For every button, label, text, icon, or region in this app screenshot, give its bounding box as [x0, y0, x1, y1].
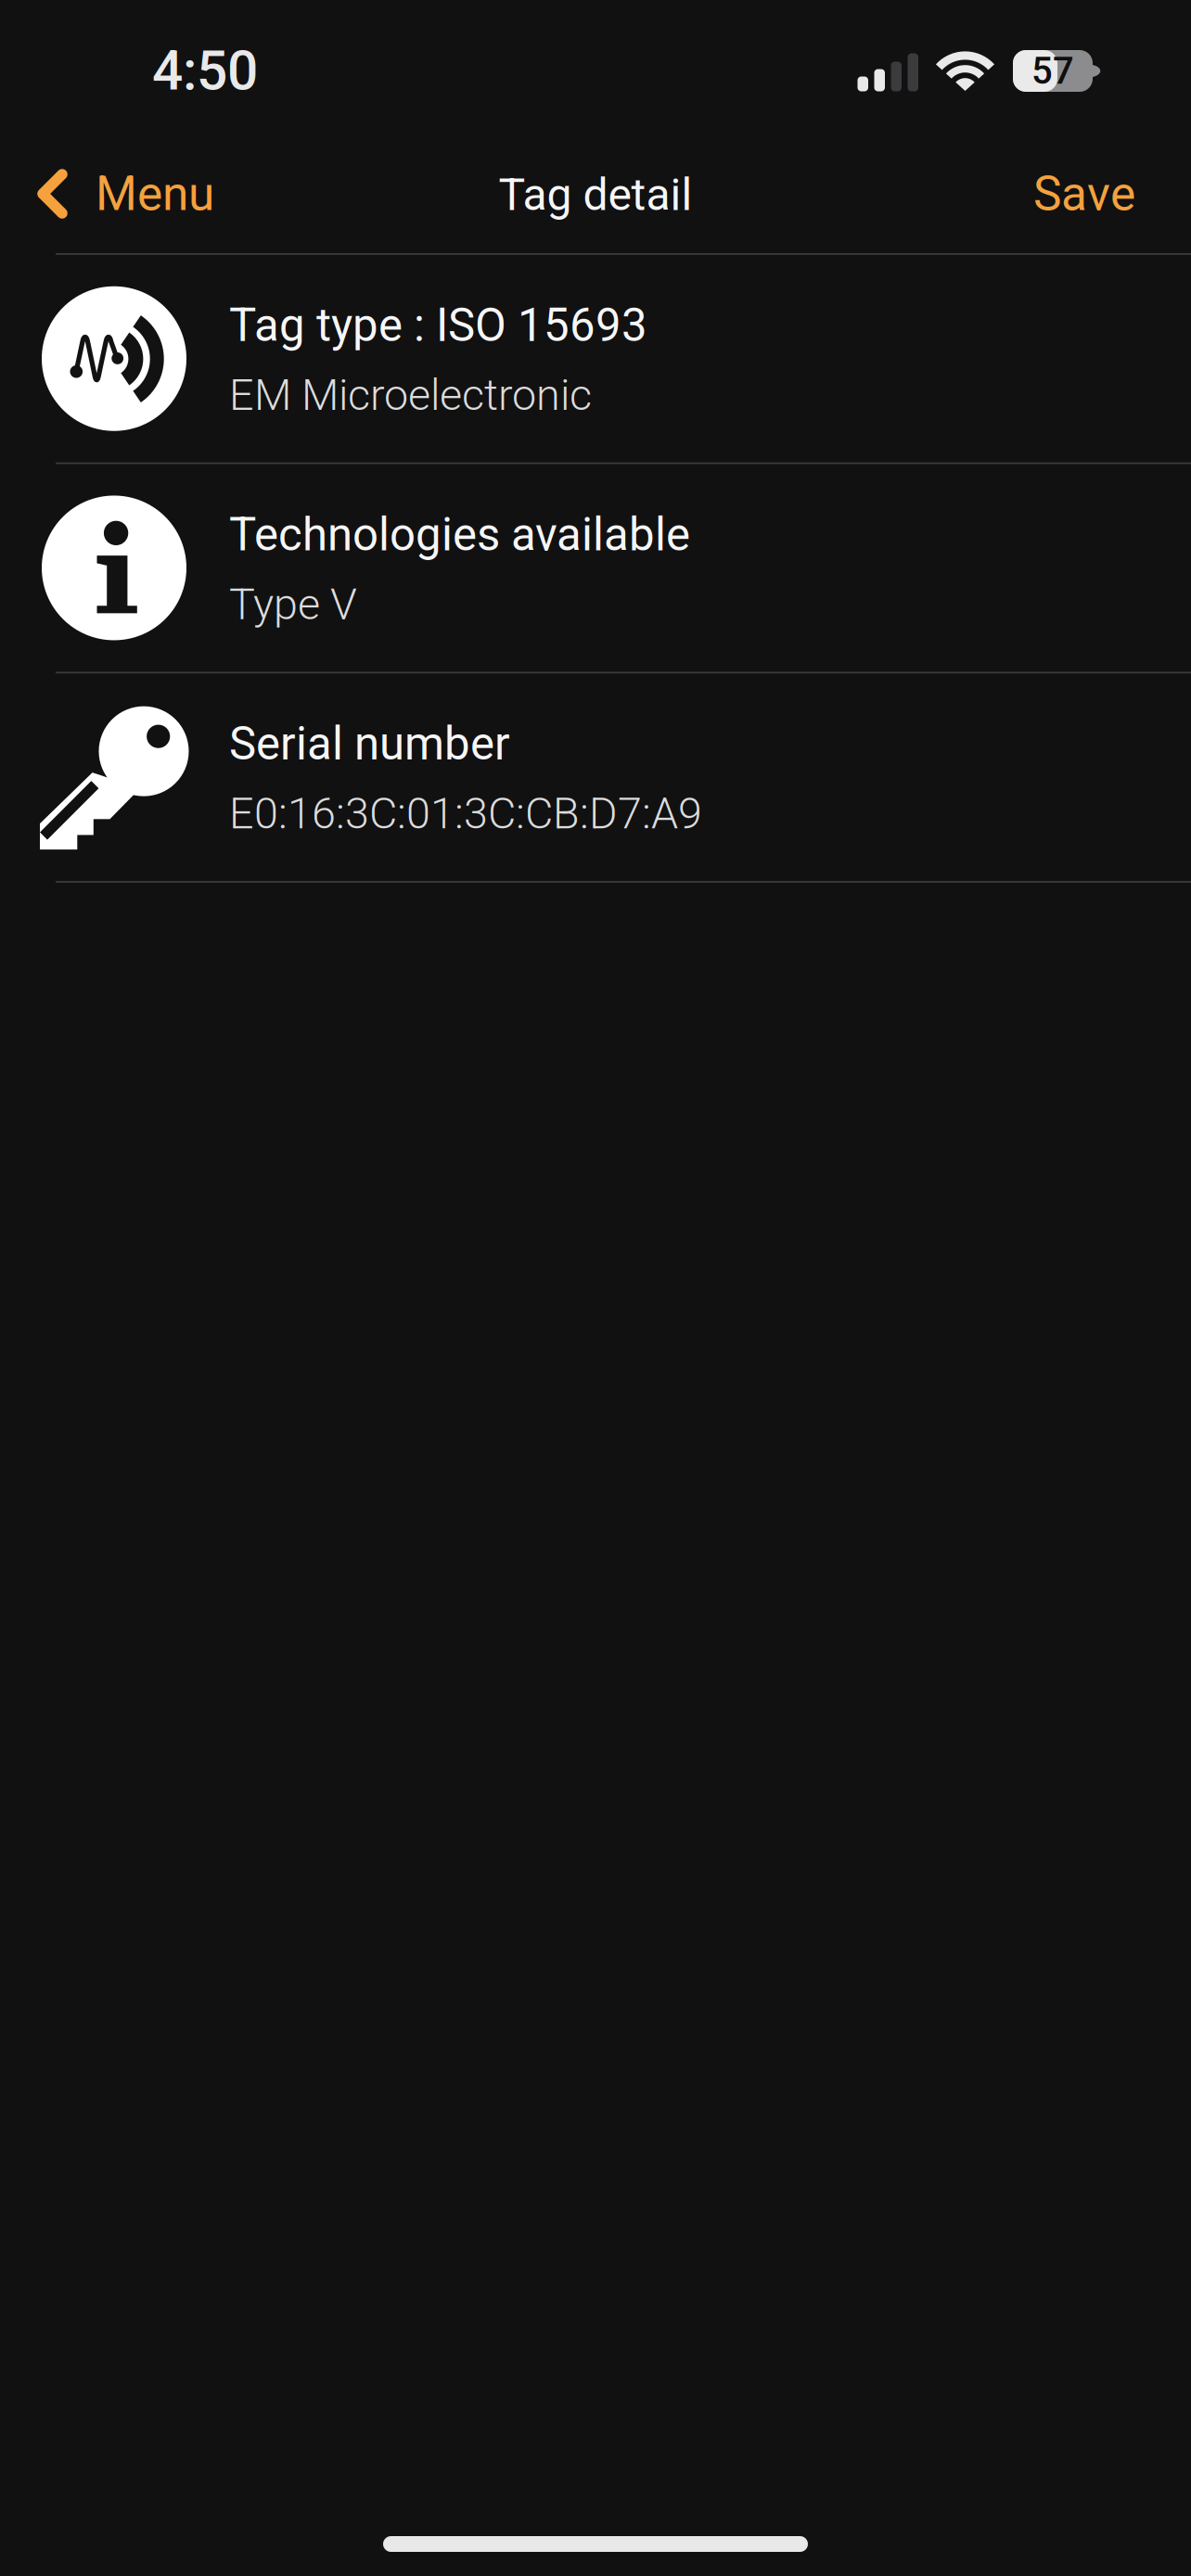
- button[interactable]: Menu: [0, 134, 237, 254]
- button[interactable]: Serial number: [0, 673, 1191, 883]
- staticText: E0:16:3C:01:3C:CB:D7:A9: [229, 788, 702, 839]
- staticText: Tag detail: [499, 169, 692, 221]
- staticText: Menu: [96, 166, 214, 222]
- staticText: 57: [1031, 49, 1074, 93]
- staticText: 4:50: [152, 39, 258, 103]
- staticText: EM Microelectronic: [229, 370, 592, 420]
- staticText: Serial number: [229, 717, 510, 771]
- button[interactable]: Save: [1011, 134, 1191, 254]
- staticText: Technologies available: [229, 508, 690, 561]
- button[interactable]: Tag type : ISO 15693: [0, 255, 1191, 464]
- staticText: Tag type : ISO 15693: [229, 299, 647, 352]
- staticText: Type V: [229, 579, 357, 630]
- staticText: Save: [1033, 166, 1135, 222]
- button[interactable]: Technologies available: [0, 464, 1191, 673]
